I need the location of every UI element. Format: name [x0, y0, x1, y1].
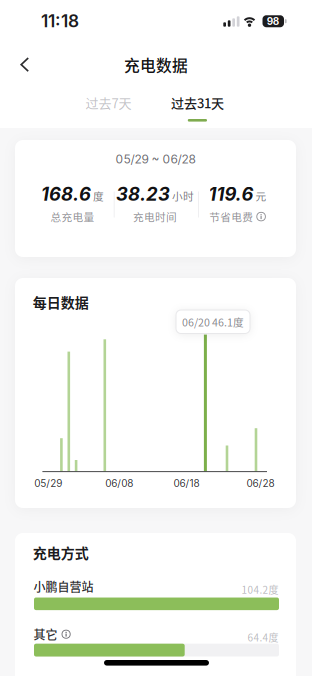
- button[interactable]: 过去7天: [0, 0, 80, 20]
- staticText: 小鹏自营站: [33, 578, 93, 595]
- staticText: 98: [267, 15, 280, 27]
- staticText: 06/08: [105, 477, 133, 489]
- button[interactable]: [10, 47, 40, 82]
- staticText: 11:18: [41, 10, 79, 31]
- staticText: 06/18: [173, 477, 199, 489]
- staticText: 38.23: [116, 183, 170, 205]
- button[interactable]: [61, 630, 71, 639]
- button[interactable]: [256, 212, 266, 221]
- staticText: 每日数据: [33, 292, 89, 312]
- staticText: 05/29: [34, 477, 62, 489]
- staticText: 05/29 ~ 06/28: [115, 152, 195, 166]
- staticText: 06/20 46.1度: [182, 314, 244, 329]
- staticText: 06/28: [246, 477, 274, 489]
- staticText: 过去31天: [171, 93, 224, 112]
- staticText: 度: [93, 188, 104, 204]
- staticText: 64.4度: [247, 630, 278, 644]
- staticText: 充电方式: [33, 542, 89, 563]
- staticText: 总充电量: [51, 209, 95, 224]
- staticText: 充电时间: [133, 209, 177, 224]
- staticText: 小时: [172, 188, 194, 204]
- staticText: 168.6: [41, 183, 91, 205]
- staticText: 充电数据: [124, 53, 188, 76]
- staticText: 其它: [33, 625, 57, 643]
- button[interactable]: 过去31天: [143, 90, 251, 124]
- staticText: 元: [256, 188, 267, 204]
- staticText: 过去7天: [85, 93, 131, 112]
- staticText: 节省电费: [209, 209, 253, 224]
- staticText: 104.2度: [241, 582, 278, 597]
- staticText: 119.6: [209, 183, 254, 205]
